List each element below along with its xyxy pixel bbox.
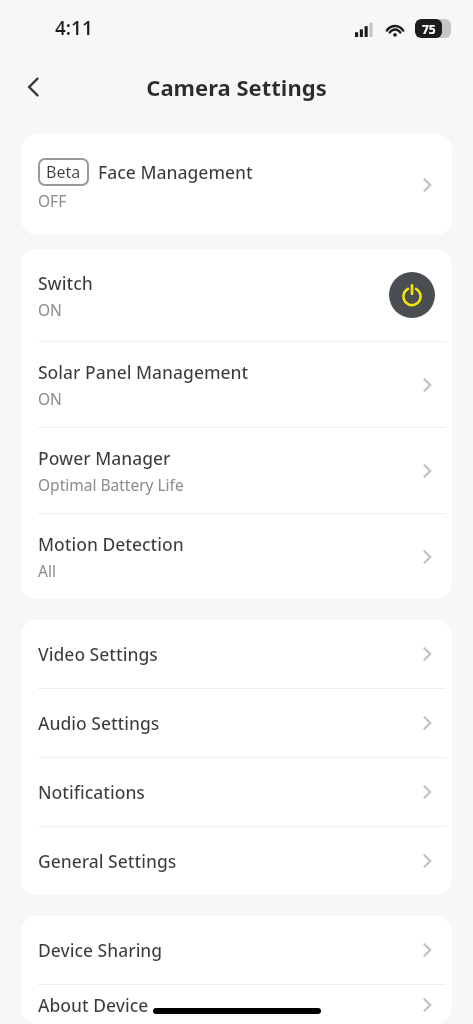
staticText: All: [38, 560, 56, 581]
button[interactable]: Switch: [21, 249, 452, 341]
staticText: Beta: [46, 161, 81, 183]
button[interactable]: Device Sharing: [21, 916, 452, 984]
button[interactable]: Back: [13, 66, 55, 108]
staticText: ON: [38, 388, 62, 409]
staticText: OFF: [38, 190, 67, 211]
staticText: Notifications: [38, 780, 145, 804]
staticText: Video Settings: [38, 642, 158, 666]
button[interactable]: Power Manager: [21, 428, 452, 513]
button[interactable]: Audio Settings: [21, 689, 452, 757]
button[interactable]: General Settings: [21, 827, 452, 895]
staticText: About Device: [38, 993, 149, 1017]
button[interactable]: About Device: [21, 985, 452, 1024]
button[interactable]: Notifications: [21, 758, 452, 826]
staticText: Audio Settings: [38, 711, 160, 735]
staticText: ON: [38, 299, 62, 320]
staticText: Face Management: [98, 160, 253, 184]
staticText: General Settings: [38, 849, 177, 873]
staticText: Solar Panel Management: [38, 360, 249, 384]
staticText: Motion Detection: [38, 532, 184, 556]
staticText: 4:11: [55, 15, 93, 41]
button[interactable]: Video Settings: [21, 620, 452, 688]
staticText: Device Sharing: [38, 938, 163, 962]
button[interactable]: Solar Panel Management: [21, 342, 452, 427]
staticText: 75: [422, 21, 436, 37]
button[interactable]: Motion Detection: [21, 514, 452, 599]
staticText: Switch: [38, 271, 93, 295]
staticText: Optimal Battery Life: [38, 474, 184, 495]
staticText: Camera Settings: [146, 72, 327, 102]
staticText: Power Manager: [38, 446, 171, 470]
button[interactable]: Beta: [21, 134, 452, 235]
button[interactable]: Power toggle: [389, 272, 435, 318]
